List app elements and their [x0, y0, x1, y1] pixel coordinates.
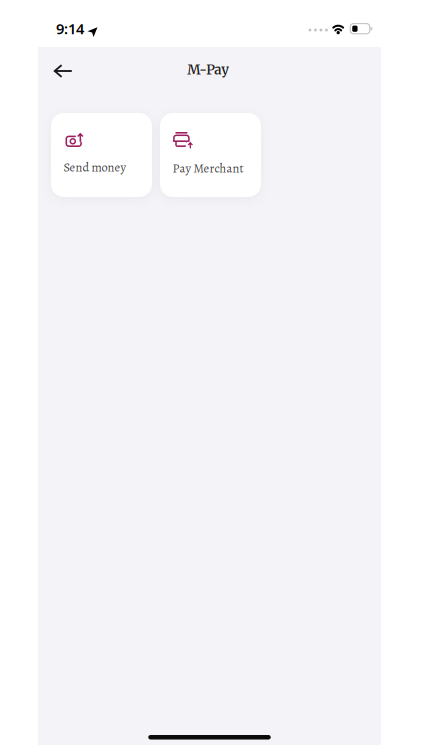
button[interactable]: Back — [38, 47, 72, 90]
button[interactable]: Send money — [51, 113, 152, 197]
button[interactable]: Pay Merchant — [160, 113, 261, 197]
staticText: M-Pay — [187, 61, 229, 78]
staticText: Pay Merchant — [172, 160, 243, 177]
staticText: Send money — [63, 159, 126, 176]
staticText: 9:14 — [56, 19, 84, 39]
